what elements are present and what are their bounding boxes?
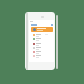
- button[interactable]: [31, 27, 53, 32]
- button[interactable]: [29, 46, 54, 50]
- button[interactable]: [29, 37, 54, 41]
- button[interactable]: [29, 54, 54, 58]
- button[interactable]: [29, 33, 54, 37]
- button[interactable]: [29, 50, 54, 54]
- button[interactable]: [29, 42, 54, 46]
